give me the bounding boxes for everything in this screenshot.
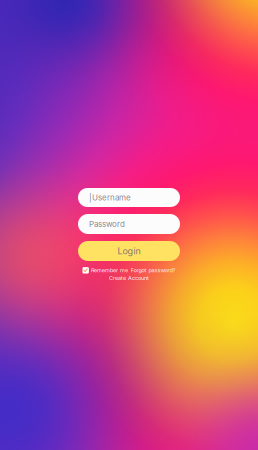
button[interactable]: Forgot password? xyxy=(130,267,175,274)
staticText: Remember me xyxy=(91,267,128,274)
staticText: |Username xyxy=(89,193,131,202)
staticText: Forgot password? xyxy=(130,267,175,274)
button[interactable]: Remember me xyxy=(82,267,128,274)
staticText: Password xyxy=(89,219,125,229)
staticText: Login xyxy=(117,245,140,256)
staticText: Create Account xyxy=(109,275,149,281)
button[interactable]: |Username xyxy=(78,188,180,207)
button[interactable]: Login xyxy=(78,241,180,261)
button[interactable]: Password xyxy=(78,214,180,234)
button[interactable]: Create Account xyxy=(109,275,149,281)
